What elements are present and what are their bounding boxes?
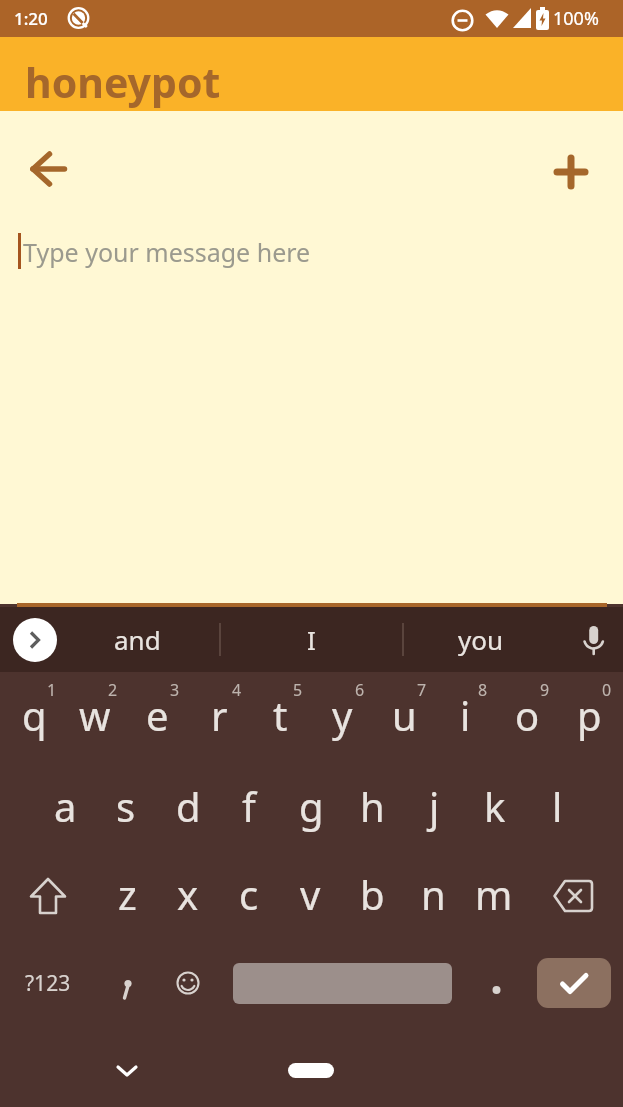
staticText: q xyxy=(22,688,47,742)
staticText: 1 xyxy=(47,679,57,701)
button[interactable] xyxy=(572,618,616,662)
staticText: ?123 xyxy=(25,969,71,998)
button[interactable]: k xyxy=(464,764,526,848)
button[interactable]: u xyxy=(373,673,435,757)
button[interactable]: n xyxy=(402,852,464,936)
button[interactable]: v xyxy=(279,852,341,936)
button[interactable]: l xyxy=(526,764,588,848)
staticText: n xyxy=(421,867,446,921)
button[interactable]: w xyxy=(64,673,126,757)
staticText: z xyxy=(118,867,137,921)
button[interactable]: h xyxy=(341,764,403,848)
staticText: 9 xyxy=(540,679,550,701)
staticText: e xyxy=(146,688,169,742)
staticText: 100% xyxy=(553,6,599,31)
button[interactable]: m xyxy=(463,852,525,936)
button[interactable] xyxy=(472,958,520,1008)
button[interactable]: q xyxy=(3,673,65,757)
button[interactable]: j xyxy=(403,764,465,848)
button[interactable]: I xyxy=(261,612,361,666)
button[interactable] xyxy=(164,959,212,1007)
staticText: and xyxy=(114,622,161,657)
staticText: 6 xyxy=(355,679,365,701)
staticText: 7 xyxy=(417,679,427,701)
button[interactable] xyxy=(537,958,611,1008)
button[interactable] xyxy=(547,148,595,196)
staticText: 3 xyxy=(170,679,180,701)
staticText: g xyxy=(299,779,324,833)
button[interactable] xyxy=(13,618,57,662)
button[interactable]: d xyxy=(157,764,219,848)
staticText: b xyxy=(360,867,385,921)
button[interactable]: ?123 xyxy=(18,958,78,1008)
staticText: s xyxy=(116,779,136,833)
button[interactable]: c xyxy=(218,852,280,936)
button[interactable] xyxy=(233,963,452,1004)
button[interactable]: Type your message here xyxy=(23,225,583,279)
button[interactable]: and xyxy=(87,612,187,666)
staticText: 0 xyxy=(602,679,612,701)
staticText: you xyxy=(458,622,504,657)
button[interactable]: a xyxy=(34,764,96,848)
button[interactable] xyxy=(549,874,597,918)
button[interactable] xyxy=(288,1063,334,1078)
staticText: v xyxy=(300,867,321,921)
button[interactable] xyxy=(103,958,151,1008)
button[interactable]: g xyxy=(280,764,342,848)
staticText: u xyxy=(392,688,417,742)
button[interactable]: p xyxy=(558,673,620,757)
staticText: h xyxy=(360,779,385,833)
staticText: t xyxy=(273,688,288,742)
staticText: w xyxy=(79,688,111,742)
staticText: 1:20 xyxy=(14,7,48,30)
staticText: r xyxy=(211,688,228,742)
staticText: 2 xyxy=(108,679,118,701)
button[interactable]: s xyxy=(95,764,157,848)
staticText: o xyxy=(515,688,540,742)
button[interactable]: b xyxy=(341,852,403,936)
button[interactable]: z xyxy=(96,852,158,936)
staticText: p xyxy=(577,688,602,742)
staticText: I xyxy=(307,622,316,657)
button[interactable]: e xyxy=(126,673,188,757)
button[interactable] xyxy=(24,145,72,193)
button[interactable]: r xyxy=(188,673,250,757)
staticText: y xyxy=(332,688,353,742)
staticText: j xyxy=(429,779,440,833)
button[interactable] xyxy=(24,872,72,920)
staticText: c xyxy=(239,867,259,921)
staticText: k xyxy=(484,779,506,833)
button[interactable]: i xyxy=(434,673,496,757)
staticText: a xyxy=(54,779,77,833)
staticText: 4 xyxy=(232,679,242,701)
button[interactable]: you xyxy=(431,612,531,666)
button[interactable]: x xyxy=(157,852,219,936)
button[interactable]: y xyxy=(311,673,373,757)
button[interactable]: o xyxy=(496,673,558,757)
staticText: x xyxy=(177,867,199,921)
button[interactable] xyxy=(105,1048,149,1092)
staticText: f xyxy=(242,779,256,833)
staticText: i xyxy=(460,688,471,742)
staticText: d xyxy=(176,779,201,833)
staticText: 5 xyxy=(293,679,303,701)
button[interactable]: f xyxy=(218,764,280,848)
staticText: honeypot xyxy=(25,54,221,110)
button[interactable]: t xyxy=(249,673,311,757)
staticText: m xyxy=(475,867,513,921)
staticText: 8 xyxy=(478,679,488,701)
staticText: Type your message here xyxy=(23,235,311,269)
staticText: l xyxy=(552,779,563,833)
